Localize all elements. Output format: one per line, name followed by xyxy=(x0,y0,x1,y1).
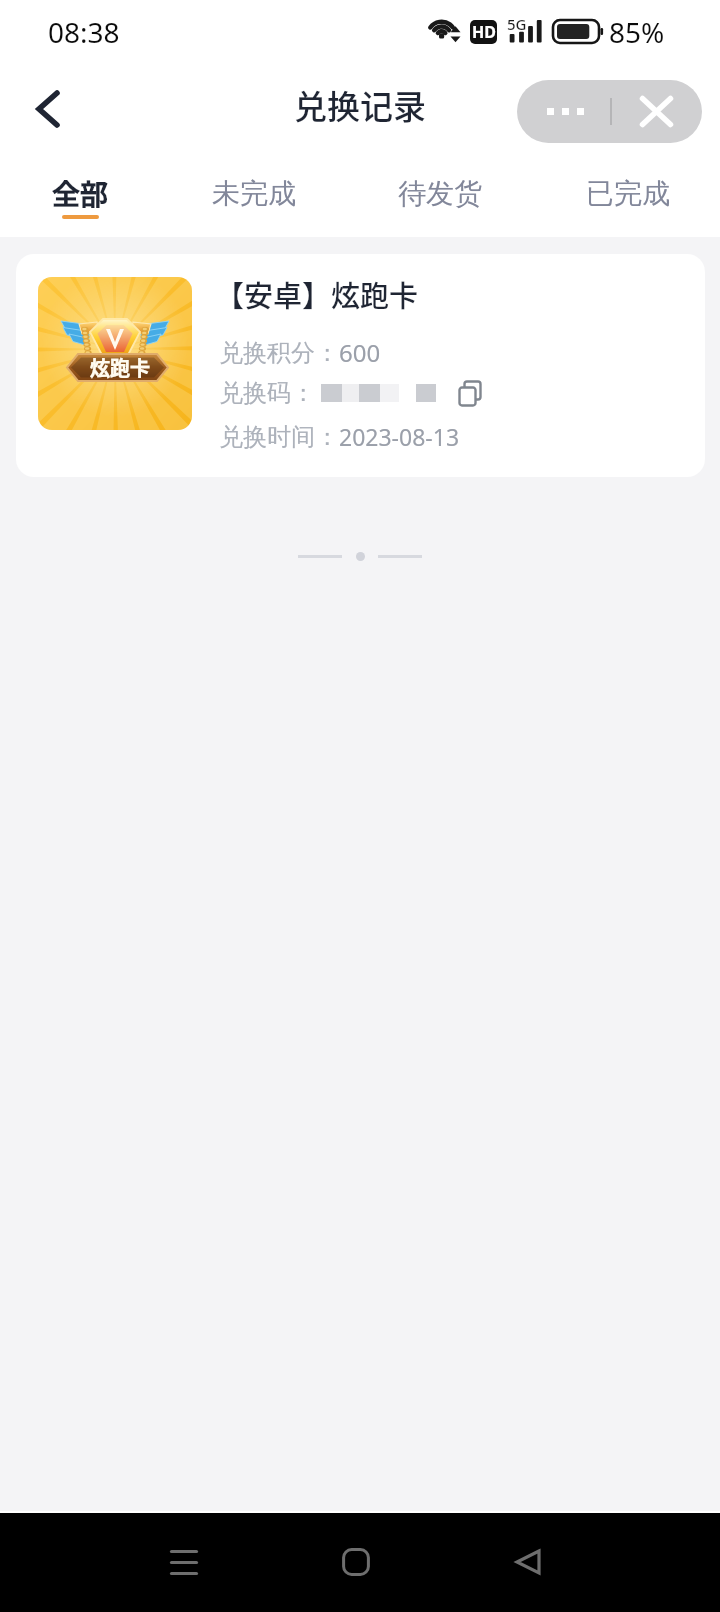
button[interactable]: 炫跑卡 xyxy=(16,254,705,477)
staticText: HD xyxy=(472,21,496,43)
button[interactable]: Back xyxy=(9,74,87,144)
button[interactable]: More options xyxy=(517,80,610,143)
staticText: 2023-08-13 xyxy=(339,421,460,452)
staticText: 600 xyxy=(339,336,381,369)
button[interactable]: Copy code xyxy=(456,378,484,408)
button[interactable]: Back xyxy=(488,1522,568,1602)
button[interactable]: 全部 xyxy=(20,154,140,237)
staticText: 兑换积分： xyxy=(219,338,339,368)
staticText: 08:38 xyxy=(48,13,120,51)
button[interactable]: Close xyxy=(612,80,702,143)
staticText: 未完成 xyxy=(212,176,296,211)
button[interactable]: Home xyxy=(316,1522,396,1602)
staticText: 【安卓】炫跑卡 xyxy=(215,273,419,315)
staticText: 待发货 xyxy=(398,176,482,211)
button[interactable]: 未完成 xyxy=(184,154,324,237)
staticText: 全部 xyxy=(52,173,109,214)
button[interactable]: 已完成 xyxy=(558,154,698,237)
button[interactable]: Recent apps xyxy=(144,1522,224,1602)
staticText: 炫跑卡 xyxy=(90,353,150,382)
staticText: 85% xyxy=(609,13,665,51)
staticText: 兑换码： xyxy=(219,378,315,408)
staticText: 5G xyxy=(507,14,527,34)
staticText: 兑换时间： xyxy=(219,422,339,452)
button[interactable]: 待发货 xyxy=(370,154,510,237)
staticText: 已完成 xyxy=(586,176,670,211)
staticText: 兑换记录 xyxy=(294,81,426,129)
